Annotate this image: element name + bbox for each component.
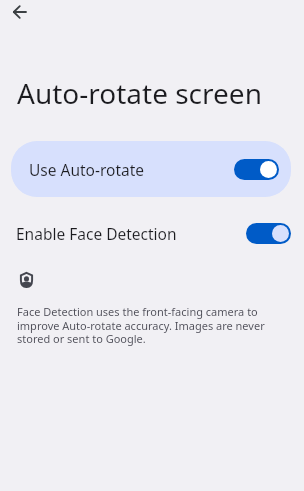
button[interactable]: Enable Face Detection: [0, 205, 304, 261]
staticText: Enable Face Detection: [16, 223, 177, 244]
button[interactable]: Use Auto-rotate: [11, 141, 291, 197]
staticText: Face Detection uses the front-facing cam…: [17, 304, 268, 346]
button[interactable]: Enable Face Detection toggle: [246, 223, 291, 244]
button[interactable]: Back: [3, 0, 35, 24]
staticText: Use Auto-rotate: [29, 159, 145, 180]
staticText: Auto-rotate screen: [17, 74, 262, 112]
button[interactable]: Use Auto-rotate toggle: [234, 159, 279, 180]
